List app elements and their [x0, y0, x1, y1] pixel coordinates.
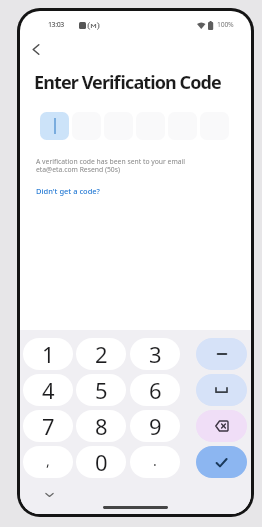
- staticText: 7: [42, 411, 55, 441]
- staticText: 2: [95, 339, 108, 369]
- staticText: 100%: [217, 20, 234, 29]
- staticText: ,: [46, 451, 50, 470]
- staticText: 4: [42, 375, 55, 405]
- staticText: 0: [95, 447, 108, 477]
- staticText: 6: [149, 375, 162, 405]
- staticText: .: [153, 451, 157, 470]
- staticText: 3: [149, 339, 162, 369]
- staticText: Didn't get a code?: [36, 186, 100, 196]
- staticText: 9: [149, 411, 162, 441]
- staticText: A verification code has been sent to you…: [36, 157, 186, 174]
- staticText: 1: [42, 339, 55, 369]
- staticText: 5: [95, 375, 108, 405]
- staticText: Enter Verification Code: [34, 70, 221, 95]
- staticText: 8: [95, 411, 108, 441]
- staticText: 13:03: [48, 20, 64, 30]
